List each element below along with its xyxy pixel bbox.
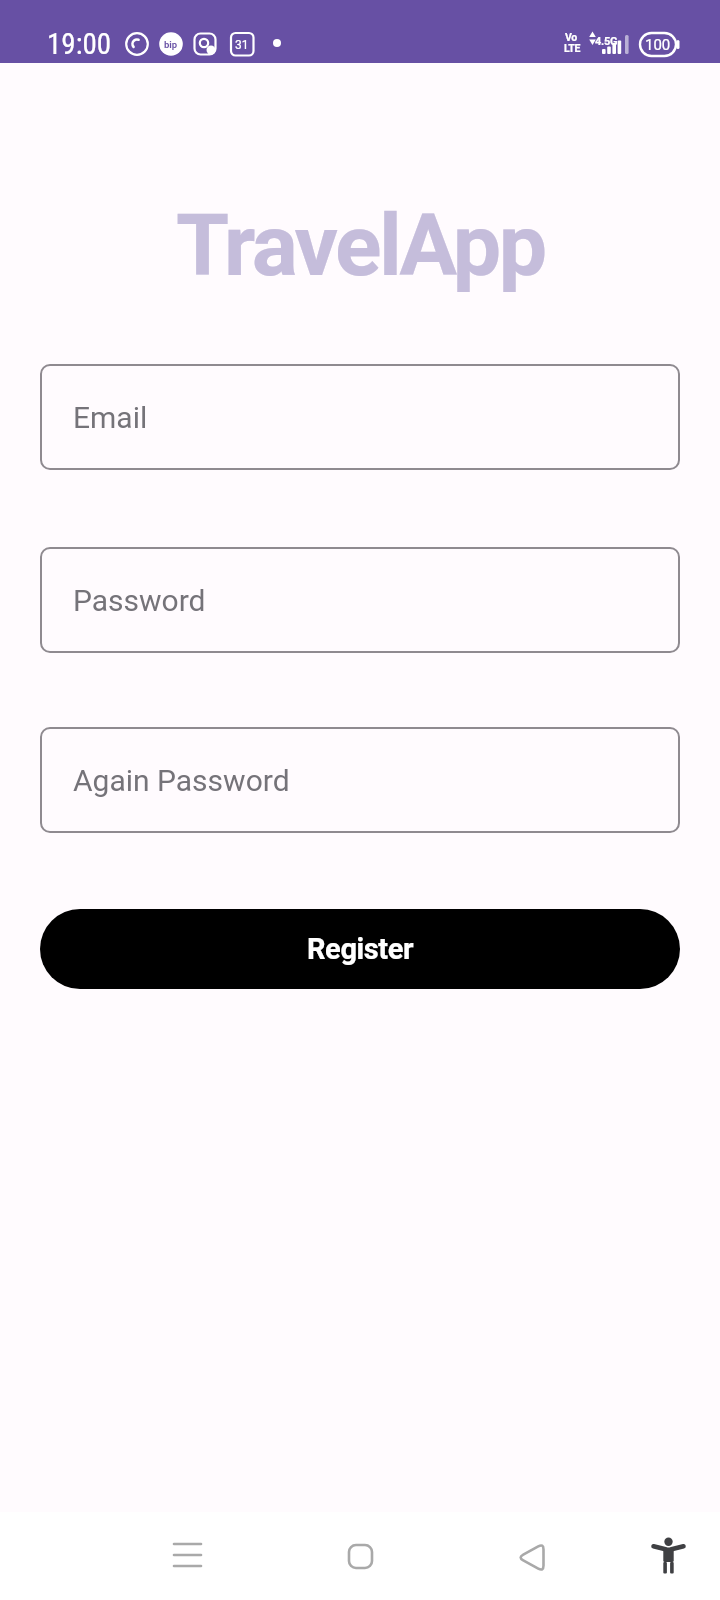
staticText: 100 [645,36,671,54]
staticText: 19:00 [47,27,112,61]
staticText: TravelApp [176,195,545,296]
staticText: 31 [235,38,249,52]
button[interactable]: Email [40,364,680,470]
staticText: Email [73,400,148,435]
staticText: Again Password [73,763,290,798]
staticText: 4.5G [595,35,618,48]
button[interactable] [488,1512,574,1600]
button[interactable] [624,1512,710,1600]
button[interactable]: Again Password [40,727,680,833]
button[interactable]: Password [40,547,680,653]
staticText: Register [307,932,414,966]
staticText: LTE [564,42,581,54]
button[interactable]: Register [40,909,680,989]
staticText: Vo [565,31,577,43]
staticText: Password [73,583,206,618]
button[interactable] [145,1512,231,1600]
staticText: bip [164,39,178,50]
button[interactable] [317,1512,403,1600]
